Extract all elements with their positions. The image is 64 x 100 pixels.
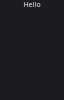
staticText: Hello [23, 0, 40, 9]
